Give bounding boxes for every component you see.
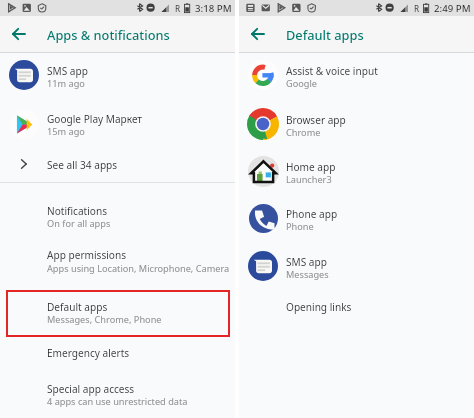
staticText: Apps & notifications: [47, 26, 170, 43]
button[interactable]: [0, 241, 235, 283]
staticText: Notifications: [47, 204, 108, 218]
staticText: Google: [286, 77, 318, 90]
staticText: Default apps: [286, 26, 364, 43]
staticText: Launcher3: [286, 173, 332, 186]
staticText: Opening links: [286, 300, 352, 314]
staticText: 15m ago: [47, 125, 85, 138]
button[interactable]: [239, 103, 474, 145]
button[interactable]: [239, 150, 474, 192]
staticText: Assist & voice input: [286, 64, 378, 78]
button[interactable]: [0, 103, 235, 145]
button[interactable]: [239, 197, 474, 239]
staticText: Google Play Маркет: [47, 112, 143, 126]
staticText: 2:49 PM: [434, 2, 471, 15]
button[interactable]: Back: [241, 17, 275, 51]
staticText: 4 apps can use unrestricted data: [47, 395, 188, 408]
staticText: SMS app: [286, 255, 327, 269]
staticText: Phone app: [286, 207, 338, 221]
button[interactable]: [239, 245, 474, 287]
staticText: 3:18 PM: [195, 2, 232, 15]
staticText: On for all apps: [47, 217, 111, 230]
button[interactable]: [239, 54, 474, 96]
button[interactable]: [0, 196, 235, 238]
button[interactable]: Back: [2, 17, 36, 51]
button[interactable]: [239, 296, 474, 322]
staticText: R: [175, 3, 181, 14]
staticText: SMS app: [47, 64, 88, 78]
button[interactable]: [6, 290, 230, 337]
staticText: App permissions: [47, 248, 127, 262]
staticText: Messages: [286, 268, 329, 281]
staticText: Special app access: [47, 382, 135, 396]
button[interactable]: [0, 342, 235, 368]
staticText: Home app: [286, 160, 336, 174]
staticText: Emergency alerts: [47, 346, 130, 360]
staticText: See all 34 apps: [47, 158, 118, 172]
staticText: Messages, Chrome, Phone: [47, 313, 162, 326]
staticText: Phone: [286, 220, 314, 233]
staticText: 11m ago: [47, 77, 85, 90]
button[interactable]: [0, 374, 235, 414]
staticText: Chrome: [286, 126, 321, 139]
button[interactable]: [0, 54, 235, 96]
staticText: Default apps: [47, 300, 108, 314]
staticText: Apps using Location, Microphone, Camera: [47, 262, 230, 275]
button[interactable]: [0, 149, 235, 179]
staticText: R: [414, 3, 420, 14]
staticText: Browser app: [286, 113, 346, 127]
